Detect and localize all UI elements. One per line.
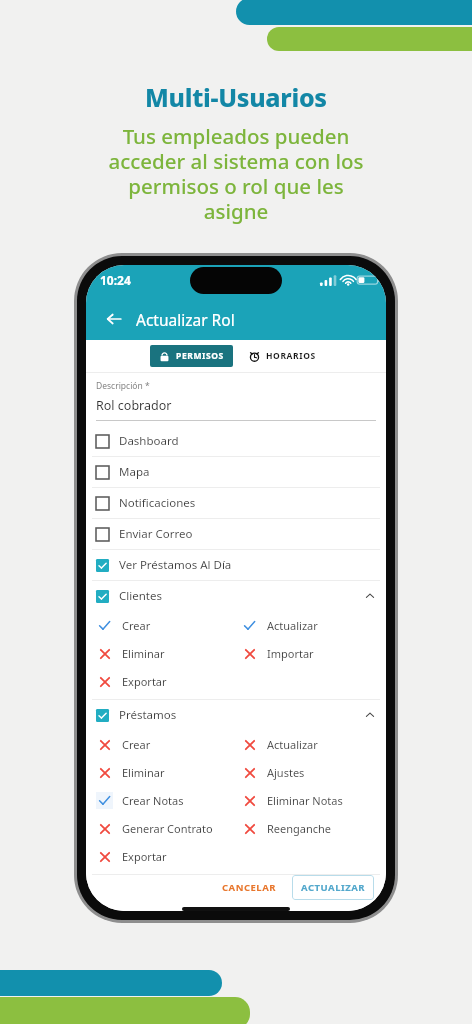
staticText: Generar Contrato [122,821,213,836]
button[interactable]: Crear [96,730,241,758]
button[interactable]: Mapa [86,457,386,487]
staticText: Reenganche [267,821,332,836]
staticText: Rol cobrador [96,397,172,414]
staticText: Exportar [122,674,167,689]
staticText: Crear Notas [122,793,184,808]
button[interactable]: Ver Préstamos Al Día [86,550,386,580]
button[interactable]: CANCELAR [214,875,284,900]
staticText: CANCELAR [222,881,276,894]
button[interactable]: PERMISOS [150,345,233,367]
staticText: 10:24 [100,272,131,288]
button[interactable]: Enviar Correo [86,519,386,549]
staticText: Importar [267,646,314,661]
button[interactable]: Generar Contrato [96,814,241,842]
button[interactable]: Crear Notas [96,786,241,814]
staticText: Eliminar [122,646,165,661]
button[interactable]: ACTUALIZAR [292,875,374,900]
staticText: PERMISOS [176,350,224,362]
button[interactable]: Ajustes [241,758,386,786]
button[interactable]: Back [98,303,130,335]
staticText: Multi-Usuarios [145,80,327,114]
staticText: Clientes [119,588,162,604]
staticText: Actualizar [267,737,318,752]
button[interactable]: Préstamos [86,700,386,730]
button[interactable]: Dashboard [86,426,386,456]
staticText: Mapa [119,464,150,480]
staticText: Tus empleados pueden acceder al sistema … [108,122,364,225]
staticText: Crear [122,737,151,752]
staticText: Actualizar [267,618,318,633]
button[interactable]: Actualizar [241,611,386,639]
staticText: HORARIOS [266,350,316,362]
staticText: Ajustes [267,765,305,780]
staticText: Eliminar Notas [267,793,343,808]
button[interactable]: Clientes [86,581,386,611]
button[interactable]: Exportar [96,667,241,695]
button[interactable]: Exportar [96,842,241,870]
staticText: Exportar [122,849,167,864]
button[interactable]: Notificaciones [86,488,386,518]
staticText: Actualizar Rol [136,309,235,330]
button[interactable]: HORARIOS [243,345,322,367]
button[interactable]: Reenganche [241,814,386,842]
staticText: Notificaciones [119,495,196,511]
button[interactable]: Actualizar [241,730,386,758]
button[interactable]: Eliminar Notas [241,786,386,814]
staticText: Eliminar [122,765,165,780]
button[interactable]: Crear [96,611,241,639]
staticText: ACTUALIZAR [301,881,365,894]
button[interactable]: Eliminar [96,639,241,667]
button[interactable]: Importar [241,639,386,667]
staticText: Préstamos [119,707,177,723]
staticText: Enviar Correo [119,526,193,542]
staticText: Dashboard [119,433,179,449]
button[interactable]: Eliminar [96,758,241,786]
staticText: Descripción * [96,380,150,392]
staticText: Crear [122,618,151,633]
staticText: Ver Préstamos Al Día [119,557,232,573]
